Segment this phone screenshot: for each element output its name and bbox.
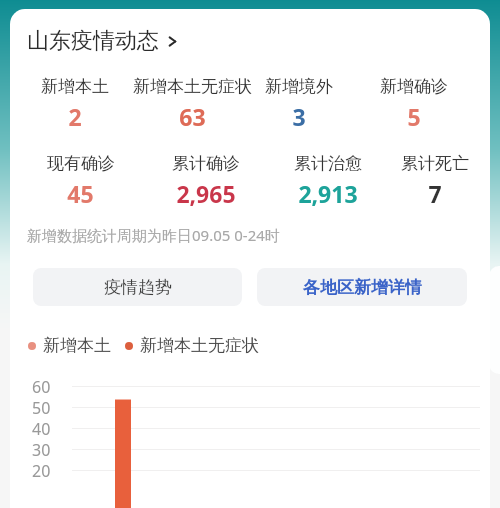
staticText: 5 bbox=[407, 101, 421, 132]
staticText: 20 bbox=[32, 460, 51, 481]
button[interactable]: 现有确诊 bbox=[18, 153, 143, 209]
button[interactable]: 累计确诊 bbox=[143, 153, 268, 209]
button[interactable]: 新增确诊 bbox=[345, 76, 482, 132]
staticText: 2 bbox=[68, 101, 82, 132]
staticText: 新增本土无症状 bbox=[133, 76, 252, 97]
staticText: 30 bbox=[32, 439, 51, 460]
staticText: 40 bbox=[32, 418, 51, 439]
staticText: 累计确诊 bbox=[172, 153, 240, 174]
staticText: 累计治愈 bbox=[294, 153, 362, 174]
staticText: 2,965 bbox=[176, 178, 236, 209]
staticText: 7 bbox=[428, 178, 442, 209]
button[interactable]: 疫情趋势 bbox=[33, 268, 242, 306]
staticText: 60 bbox=[32, 376, 51, 397]
staticText: 累计死亡 bbox=[401, 153, 469, 174]
button[interactable]: 各地区新增详情 bbox=[257, 268, 467, 306]
staticText: 新增确诊 bbox=[380, 76, 448, 97]
staticText: 新增境外 bbox=[265, 76, 333, 97]
staticText: 45 bbox=[67, 178, 94, 209]
staticText: 63 bbox=[179, 101, 206, 132]
staticText: 2,913 bbox=[298, 178, 358, 209]
button[interactable]: 新增本土无症状 bbox=[132, 76, 253, 132]
staticText: 50 bbox=[32, 397, 51, 418]
staticText: 各地区新增详情 bbox=[303, 277, 422, 298]
staticText: 新增本土 bbox=[41, 76, 109, 97]
staticText: 新增数据统计周期为昨日09.05 0-24时 bbox=[27, 225, 280, 245]
button[interactable]: 新增本土 bbox=[18, 76, 132, 132]
other: Open details bbox=[166, 35, 179, 48]
staticText: 疫情趋势 bbox=[104, 277, 172, 298]
staticText: 3 bbox=[292, 101, 306, 132]
staticText: 山东疫情动态 bbox=[27, 27, 159, 55]
button[interactable]: 新增境外 bbox=[253, 76, 345, 132]
button[interactable]: 累计死亡 bbox=[388, 153, 482, 209]
staticText: 新增本土 bbox=[43, 335, 111, 356]
staticText: 现有确诊 bbox=[47, 153, 115, 174]
button[interactable]: 山东疫情动态 bbox=[27, 27, 473, 55]
button[interactable]: 累计治愈 bbox=[268, 153, 388, 209]
staticText: 新增本土无症状 bbox=[140, 335, 259, 356]
